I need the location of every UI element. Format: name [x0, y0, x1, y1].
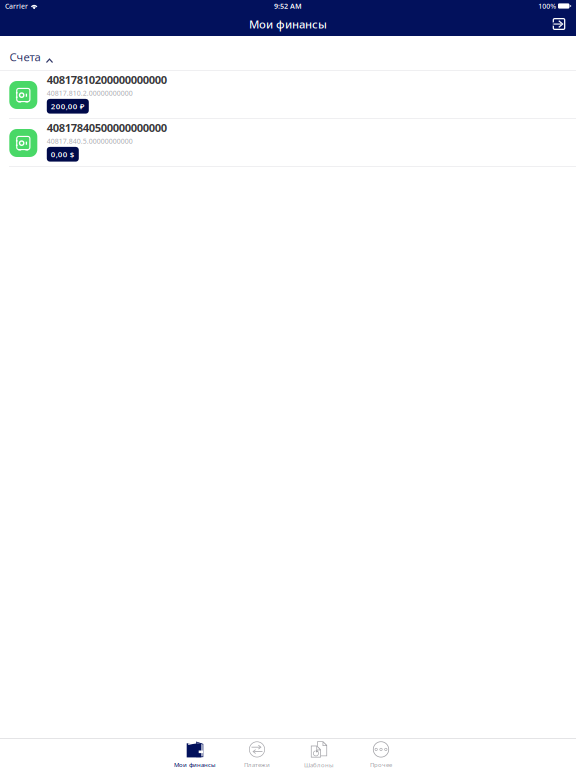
staticText: Шаблоны [304, 761, 334, 768]
staticText: 9:52 AM [274, 1, 302, 11]
staticText: Платежи [244, 760, 270, 768]
button[interactable]: Счета [0, 36, 576, 70]
staticText: Мои финансы [174, 760, 216, 768]
button[interactable]: 40817840500000000000 [0, 119, 576, 167]
staticText: 40817.810.2.00000000000 [47, 88, 133, 98]
staticText: Прочее [370, 760, 392, 768]
staticText: 40817.840.5.00000000000 [47, 136, 133, 146]
button[interactable]: Мои финансы [164, 739, 226, 768]
staticText: 0,00 $ [51, 149, 75, 160]
staticText: 100% [538, 1, 556, 11]
staticText: Carrier [5, 1, 28, 11]
button[interactable]: Шаблоны [288, 739, 350, 768]
staticText: 200,00 ₽ [51, 101, 85, 112]
button[interactable]: 40817810200000000000 [0, 71, 576, 119]
button[interactable]: Платежи [226, 739, 288, 768]
staticText: 40817840500000000000 [47, 120, 167, 135]
staticText: 40817810200000000000 [47, 72, 167, 87]
button[interactable]: Выход [542, 12, 576, 36]
staticText: Мои финансы [249, 16, 327, 32]
staticText: Счета [9, 49, 40, 64]
button[interactable]: Прочее [350, 739, 412, 768]
